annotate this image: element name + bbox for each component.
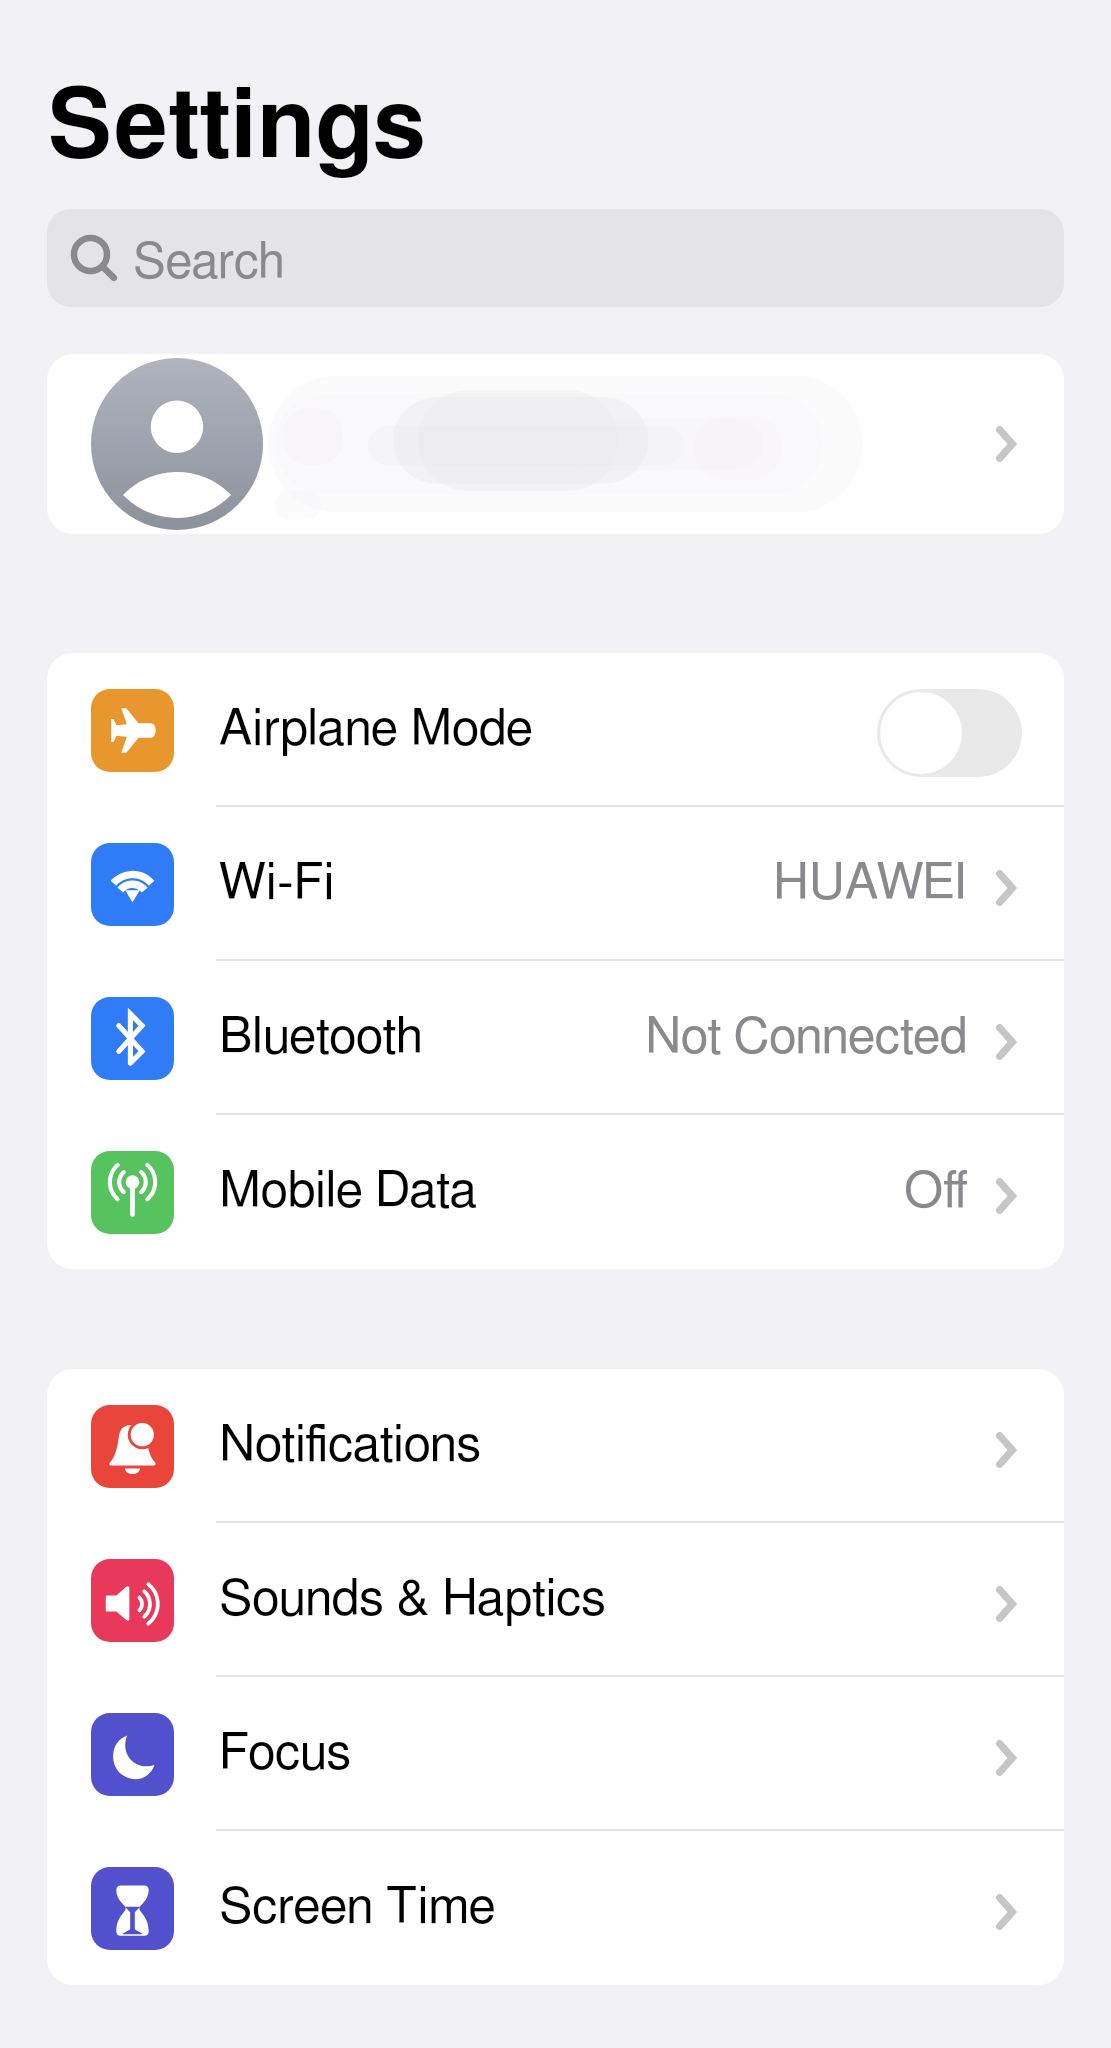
button[interactable]: Focus xyxy=(47,1677,1064,1831)
staticText: Screen Time xyxy=(219,1883,496,1933)
button[interactable]: Airplane Mode toggle xyxy=(877,689,1022,777)
staticText: HUAWEI xyxy=(773,859,968,909)
staticText: Off xyxy=(904,1167,968,1217)
staticText: Search xyxy=(133,239,285,288)
button[interactable]: Screen Time xyxy=(47,1831,1064,1985)
staticText: Not Connected xyxy=(645,1013,968,1063)
staticText: Bluetooth xyxy=(219,1013,423,1063)
button[interactable]: Search settings xyxy=(47,209,1064,307)
staticText: Settings xyxy=(47,80,426,176)
staticText: Focus xyxy=(219,1729,351,1779)
button[interactable]: Airplane Mode xyxy=(47,653,1064,807)
button[interactable]: Sounds & Haptics xyxy=(47,1523,1064,1677)
button[interactable]: Mobile Data xyxy=(47,1115,1064,1269)
staticText: Sounds & Haptics xyxy=(219,1575,606,1625)
button[interactable]: Bluetooth xyxy=(47,961,1064,1115)
staticText: Notifications xyxy=(219,1421,481,1471)
button[interactable]: Wi-Fi xyxy=(47,807,1064,961)
button[interactable]: Notifications xyxy=(47,1369,1064,1523)
staticText: Wi-Fi xyxy=(219,859,335,909)
staticText: Airplane Mode xyxy=(219,705,533,755)
button[interactable]: Apple Account, iCloud and more xyxy=(47,354,1064,534)
staticText: Mobile Data xyxy=(219,1167,477,1217)
